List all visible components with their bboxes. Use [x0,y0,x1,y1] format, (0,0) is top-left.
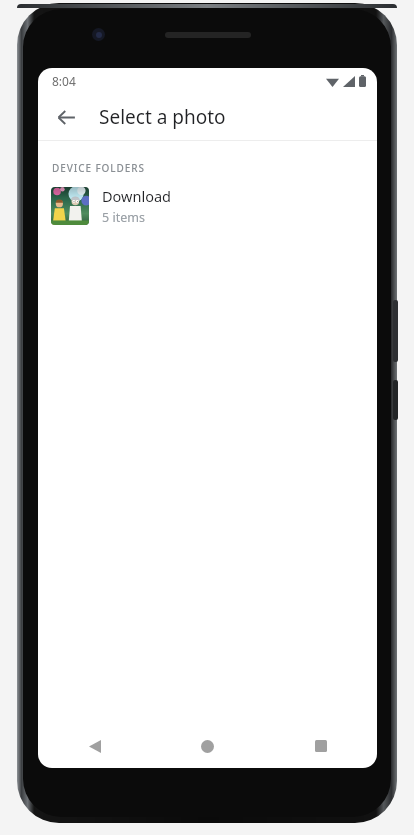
button[interactable]: Back [38,724,151,768]
staticText: DEVICE FOLDERS [52,161,145,175]
button[interactable]: Home [151,724,264,768]
button[interactable]: Recent apps [264,724,377,768]
staticText: Select a photo [99,104,226,130]
button[interactable]: Download [38,175,377,237]
staticText: 5 items [102,209,145,226]
staticText: 8:04 [52,73,76,89]
staticText: Download [102,186,171,206]
button[interactable]: Back [44,95,88,139]
